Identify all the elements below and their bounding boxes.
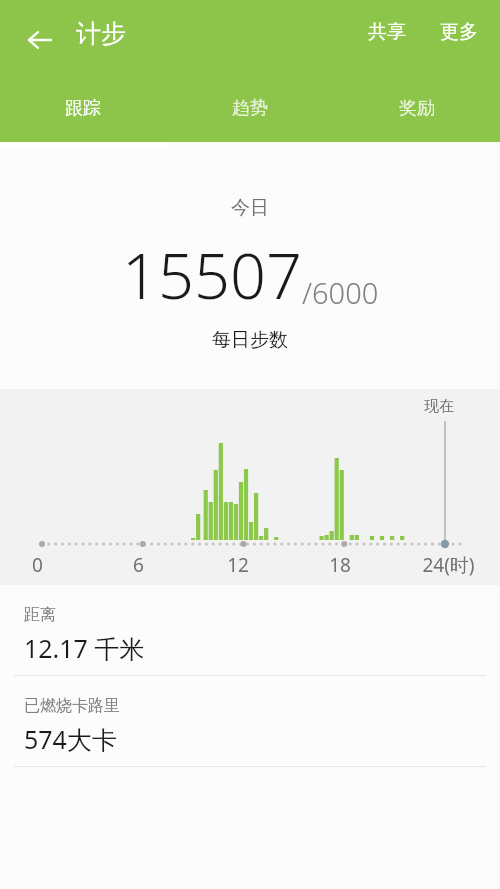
staticText: 15507 xyxy=(122,232,302,318)
staticText: 趋势 xyxy=(232,97,268,120)
button[interactable]: 距离 xyxy=(0,585,500,675)
staticText: 0 xyxy=(32,552,43,578)
staticText: /6000 xyxy=(302,273,379,312)
button[interactable]: 返回 xyxy=(16,16,64,64)
button[interactable]: 已燃烧卡路里 xyxy=(0,676,500,766)
button[interactable]: 更多 xyxy=(440,20,478,44)
staticText: 奖励 xyxy=(399,97,435,120)
button[interactable]: 共享 xyxy=(368,20,406,44)
staticText: 计步 xyxy=(76,18,126,49)
staticText: 574大卡 xyxy=(24,722,117,756)
staticText: 24(时) xyxy=(422,552,475,578)
staticText: 更多 xyxy=(440,20,478,44)
staticText: 共享 xyxy=(368,20,406,44)
staticText: 距离 xyxy=(24,605,56,625)
button[interactable]: 趋势 xyxy=(166,88,333,128)
staticText: 现在 xyxy=(424,397,454,416)
staticText: 18 xyxy=(329,552,351,578)
staticText: 12 xyxy=(227,552,249,578)
staticText: 每日步数 xyxy=(212,328,288,352)
staticText: 12.17 千米 xyxy=(24,631,145,665)
staticText: 已燃烧卡路里 xyxy=(24,696,120,716)
button[interactable]: 奖励 xyxy=(333,88,500,128)
button[interactable]: 计步 xyxy=(76,18,126,49)
staticText: 跟踪 xyxy=(65,97,101,120)
staticText: 6 xyxy=(133,552,144,578)
staticText: 今日 xyxy=(231,196,269,220)
button[interactable]: 跟踪 xyxy=(0,88,166,128)
